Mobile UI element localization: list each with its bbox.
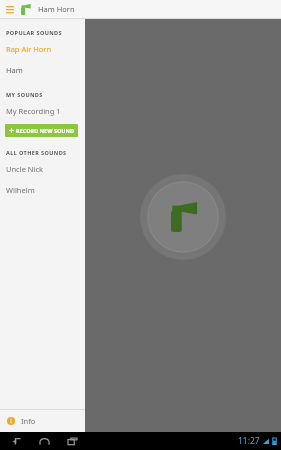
button[interactable]: Recent apps (62, 432, 82, 450)
button[interactable]: RECORD NEW SOUND (5, 124, 78, 137)
button[interactable]: Home (34, 432, 54, 450)
staticText: ALL OTHER SOUNDS (6, 149, 67, 156)
button[interactable]: Uncle Nick (0, 158, 85, 179)
button[interactable]: Ham (0, 59, 85, 80)
button[interactable]: Open navigation drawer (3, 3, 16, 16)
button[interactable]: Back (6, 432, 26, 450)
staticText: Info (21, 416, 36, 426)
staticText: Wilhelm (6, 185, 35, 195)
staticText: RECORD NEW SOUND (16, 127, 74, 134)
button[interactable]: Play sound (140, 174, 226, 260)
staticText: 11:27 (238, 435, 260, 447)
button[interactable]: Rap Air Horn (0, 38, 85, 59)
staticText: MY SOUNDS (6, 91, 43, 98)
button[interactable]: Wilhelm (0, 179, 85, 200)
button[interactable]: My Recording 1 (0, 100, 85, 121)
staticText: My Recording 1 (6, 106, 61, 116)
button[interactable]: Info (0, 410, 85, 432)
staticText: POPULAR SOUNDS (6, 29, 62, 36)
staticText: Uncle Nick (6, 164, 44, 174)
staticText: Rap Air Horn (6, 44, 52, 54)
staticText: Ham Horn (38, 4, 75, 14)
staticText: Ham (6, 65, 23, 75)
